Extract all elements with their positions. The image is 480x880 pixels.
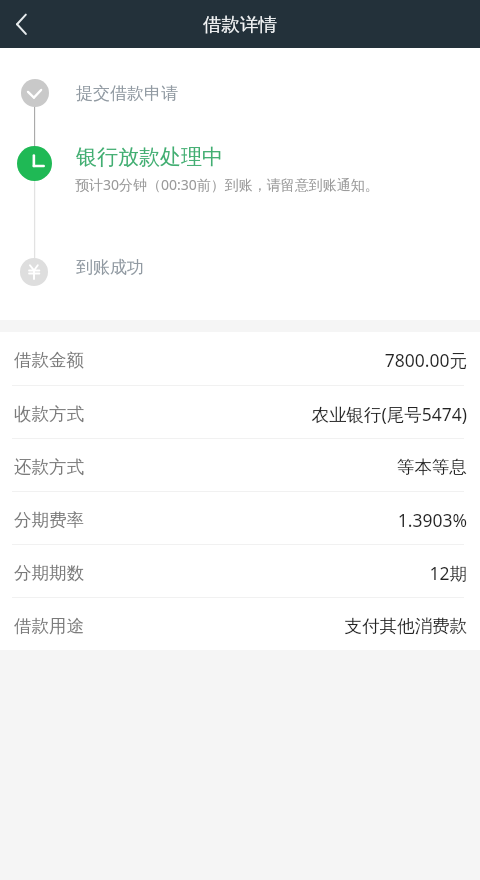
staticText: 银行放款处理中 — [76, 144, 223, 170]
staticText: 12期 — [92, 561, 467, 585]
staticText: 分期费率 — [14, 509, 84, 531]
staticText: 等本等息 — [92, 456, 467, 478]
other: Funds received — [20, 258, 48, 286]
staticText: 提交借款申请 — [76, 83, 178, 104]
staticText: 分期期数 — [14, 562, 84, 584]
staticText: 7800.00元 — [92, 348, 467, 372]
other: Application submitted — [21, 79, 49, 107]
staticText: 借款用途 — [14, 615, 84, 637]
button[interactable]: 借款用途 — [0, 597, 480, 650]
staticText: 收款方式 — [14, 403, 84, 425]
staticText: 预计30分钟（00:30前）到账，请留意到账通知。 — [75, 175, 379, 194]
button[interactable]: 分期费率 — [0, 491, 480, 544]
staticText: 到账成功 — [76, 257, 144, 278]
staticText: 农业银行(尾号5474) — [92, 402, 467, 426]
button[interactable]: 分期期数 — [0, 544, 480, 597]
staticText: 1.3903% — [92, 508, 467, 532]
button[interactable]: 收款方式 — [0, 385, 480, 438]
button[interactable]: 还款方式 — [0, 438, 480, 491]
staticText: 借款金额 — [14, 349, 84, 371]
button[interactable]: Back — [0, 0, 44, 48]
staticText: 还款方式 — [14, 456, 84, 478]
staticText: 借款详情 — [203, 13, 277, 36]
staticText: 支付其他消费款 — [92, 615, 467, 637]
other: Bank transfer in progress — [17, 146, 52, 181]
button[interactable]: 借款金额 — [0, 332, 480, 385]
